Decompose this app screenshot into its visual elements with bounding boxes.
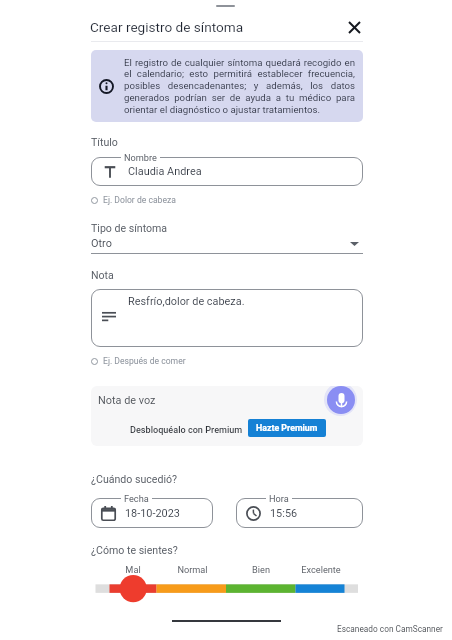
staticText: Escaneado con CamScanner xyxy=(337,624,443,634)
staticText: Mal xyxy=(125,564,141,575)
button[interactable]: Grabar nota de voz xyxy=(327,386,355,414)
staticText: Nota de voz xyxy=(98,394,156,407)
staticText: Desbloquéalo con Premium xyxy=(130,425,243,436)
button[interactable]: Hazte Premium xyxy=(248,419,326,437)
button[interactable]: 15:56 xyxy=(236,498,363,528)
staticText: Bien xyxy=(252,564,270,575)
staticText: El registro de cualquier síntoma quedará… xyxy=(124,57,355,116)
staticText: Nombre xyxy=(124,152,157,163)
staticText: Resfrío,dolor de cabeza. xyxy=(128,295,245,308)
staticText: ¿Cuándo sucedió? xyxy=(91,473,178,485)
staticText: 18-10-2023 xyxy=(125,507,180,520)
staticText: Crear registro de síntoma xyxy=(90,19,244,35)
staticText: ¿Cómo te sientes? xyxy=(91,544,178,556)
button[interactable]: Otro xyxy=(91,234,363,253)
staticText: Hazte Premium xyxy=(256,423,318,433)
staticText: Ej. Dolor de cabeza xyxy=(103,195,176,205)
staticText: Claudia Andrea xyxy=(128,165,202,178)
staticText: Hora xyxy=(269,493,289,504)
button[interactable]: Cerrar xyxy=(344,17,364,37)
staticText: Excelente xyxy=(301,564,341,575)
staticText: Fecha xyxy=(124,493,149,504)
staticText: 15:56 xyxy=(270,507,298,520)
staticText: Normal xyxy=(177,564,208,575)
button[interactable]: 18-10-2023 xyxy=(91,498,213,528)
staticText: Título xyxy=(91,136,118,148)
staticText: Nota xyxy=(91,269,114,281)
button[interactable]: Resfrío,dolor de cabeza. xyxy=(91,289,363,347)
staticText: Tipo de síntoma xyxy=(91,222,168,234)
button[interactable]: Claudia Andrea xyxy=(91,157,363,186)
staticText: Ej. Después de comer xyxy=(103,356,186,366)
staticText: Otro xyxy=(91,237,112,250)
